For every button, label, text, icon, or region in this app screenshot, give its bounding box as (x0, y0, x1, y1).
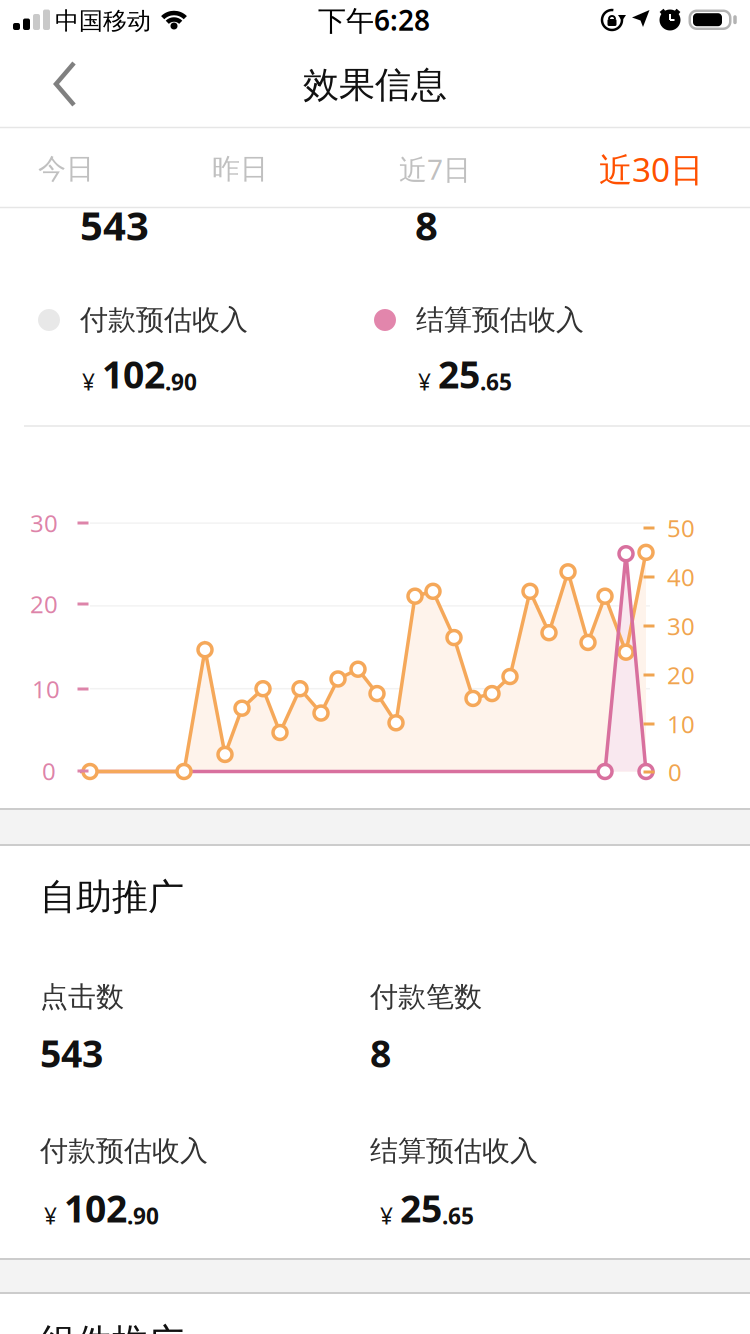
button[interactable]: 近30日 (585, 129, 717, 209)
staticText: 昨日 (212, 152, 268, 186)
staticText: ¥ (82, 367, 95, 397)
staticText: 付款预估收入 (40, 1134, 208, 1168)
staticText: .65 (442, 1201, 474, 1231)
staticText: 自助推广 (40, 875, 184, 919)
button[interactable]: 近7日 (385, 132, 485, 206)
staticText: 102 (102, 349, 165, 399)
staticText: ¥ (44, 1201, 57, 1231)
staticText: 近7日 (399, 150, 471, 188)
staticText: 25 (400, 1183, 442, 1233)
staticText: 50 (667, 512, 695, 544)
staticText: 组件推广 (40, 1320, 184, 1334)
staticText: 10 (667, 708, 695, 740)
staticText: .90 (127, 1201, 159, 1231)
staticText: 543 (40, 1028, 103, 1078)
staticText: 10 (32, 673, 60, 705)
staticText: 结算预估收入 (416, 303, 584, 337)
staticText: 8 (415, 198, 438, 251)
staticText: 0 (42, 755, 56, 787)
staticText: 20 (30, 588, 58, 620)
staticText: 近30日 (599, 147, 703, 191)
staticText: 点击数 (40, 980, 124, 1014)
staticText: 102 (64, 1183, 127, 1233)
staticText: 20 (667, 659, 695, 691)
staticText: 中国移动 (55, 6, 151, 36)
staticText: 543 (80, 198, 149, 251)
staticText: 40 (667, 561, 695, 593)
staticText: 30 (667, 610, 695, 642)
staticText: 今日 (38, 152, 94, 186)
button[interactable]: Back (34, 51, 104, 117)
staticText: 30 (30, 507, 58, 539)
staticText: 8 (370, 1028, 391, 1078)
button[interactable]: 昨日 (198, 134, 282, 204)
button[interactable]: 今日 (24, 134, 108, 204)
staticText: 下午6:28 (318, 1, 430, 39)
staticText: .90 (165, 367, 197, 397)
staticText: 付款笔数 (370, 980, 482, 1014)
staticText: 0 (668, 756, 682, 788)
staticText: 25 (438, 349, 480, 399)
staticText: 结算预估收入 (370, 1134, 538, 1168)
staticText: .65 (480, 367, 512, 397)
staticText: 效果信息 (303, 63, 447, 107)
staticText: 付款预估收入 (80, 303, 248, 337)
staticText: ¥ (380, 1201, 393, 1231)
staticText: ¥ (418, 367, 431, 397)
